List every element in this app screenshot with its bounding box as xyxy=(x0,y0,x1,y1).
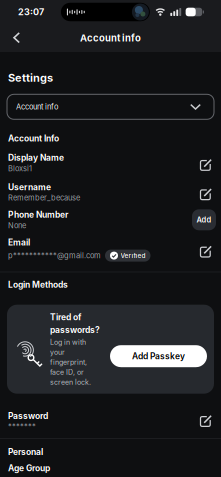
staticText: Add Passkey xyxy=(132,351,185,361)
button[interactable]: Add xyxy=(192,209,216,230)
staticText: Tired of passwords? xyxy=(50,312,100,335)
staticText: Verified xyxy=(120,252,145,260)
button[interactable]: Add Passkey xyxy=(110,345,207,367)
button[interactable]: Settings section selector xyxy=(7,94,214,119)
staticText: Bloxsi1 xyxy=(8,164,32,173)
staticText: Password xyxy=(8,411,48,421)
staticText: Email xyxy=(8,237,30,248)
staticText: Add xyxy=(196,215,211,224)
staticText: ******* xyxy=(8,422,36,431)
staticText: Account Info xyxy=(8,133,59,144)
button[interactable]: Edit email xyxy=(199,244,213,258)
button[interactable]: Edit display name xyxy=(199,158,213,172)
staticText: Remember_because xyxy=(8,193,80,202)
staticText: Display Name xyxy=(8,153,64,163)
staticText: Username xyxy=(8,182,51,192)
staticText: p***********@gmail.com xyxy=(8,251,101,260)
staticText: Phone Number xyxy=(8,210,68,220)
staticText: Account info xyxy=(16,102,58,111)
staticText: Log in with your fingerprint, face ID, o… xyxy=(50,338,91,386)
staticText: Settings xyxy=(8,71,53,84)
button[interactable]: Edit username xyxy=(199,187,213,201)
staticText: Personal xyxy=(8,447,43,457)
button[interactable]: Edit password xyxy=(199,414,213,428)
staticText: 23:07 xyxy=(18,7,44,17)
staticText: Age Group xyxy=(8,463,50,473)
button[interactable]: Back xyxy=(0,24,21,52)
staticText: None xyxy=(8,221,26,230)
staticText: Account info xyxy=(80,32,141,44)
staticText: Login Methods xyxy=(8,279,68,290)
